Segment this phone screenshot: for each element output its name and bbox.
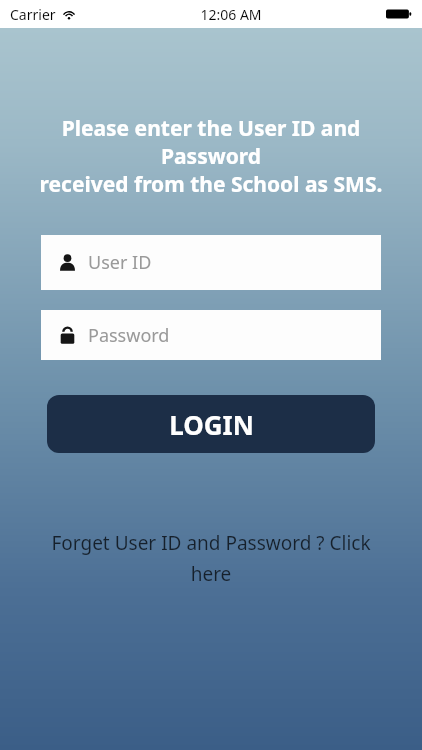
staticText: Password — [88, 323, 170, 348]
staticText: 12:06 AM — [200, 5, 262, 24]
staticText: User ID — [88, 250, 152, 275]
button[interactable]: User ID — [41, 235, 381, 290]
button[interactable]: Forget User ID and Password ? Click here — [40, 530, 382, 586]
staticText: Please enter the User ID and Password re… — [10, 114, 412, 198]
button[interactable]: Password — [41, 310, 381, 360]
staticText: Forget User ID and Password ? Click here — [40, 530, 382, 586]
staticText: LOGIN — [169, 407, 254, 442]
staticText: Carrier — [10, 5, 56, 24]
button[interactable]: LOGIN — [47, 395, 375, 453]
